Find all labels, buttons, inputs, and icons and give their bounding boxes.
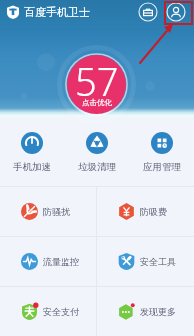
staticText: 点击优化 bbox=[82, 98, 112, 107]
button[interactable]: Account bbox=[166, 2, 186, 22]
button[interactable]: 应用管理 bbox=[129, 118, 194, 173]
staticText: 安全工具 bbox=[140, 256, 176, 267]
button[interactable]: 垃圾清理 bbox=[64, 118, 129, 173]
button[interactable]: 安全支付 bbox=[0, 287, 96, 336]
button[interactable]: 防吸费 bbox=[97, 187, 194, 236]
button[interactable]: 发现更多 bbox=[97, 287, 194, 336]
staticText: 百度手机卫士 bbox=[24, 5, 90, 19]
staticText: 发现更多 bbox=[140, 306, 176, 317]
staticText: 防骚扰 bbox=[43, 206, 70, 217]
button[interactable]: 防骚扰 bbox=[0, 187, 96, 236]
button[interactable]: 安全工具 bbox=[97, 237, 194, 286]
staticText: 手机加速 bbox=[13, 161, 51, 173]
staticText: 防吸费 bbox=[140, 206, 167, 217]
button[interactable]: 流量监控 bbox=[0, 237, 96, 286]
staticText: 流量监控 bbox=[43, 256, 79, 267]
button[interactable]: Toolbox bbox=[138, 2, 158, 22]
staticText: 应用管理 bbox=[143, 161, 181, 173]
staticText: 57 bbox=[75, 55, 119, 107]
button[interactable]: 57 bbox=[67, 55, 126, 114]
staticText: 垃圾清理 bbox=[78, 161, 116, 173]
button[interactable]: 手机加速 bbox=[0, 118, 64, 173]
staticText: 安全支付 bbox=[43, 306, 79, 317]
